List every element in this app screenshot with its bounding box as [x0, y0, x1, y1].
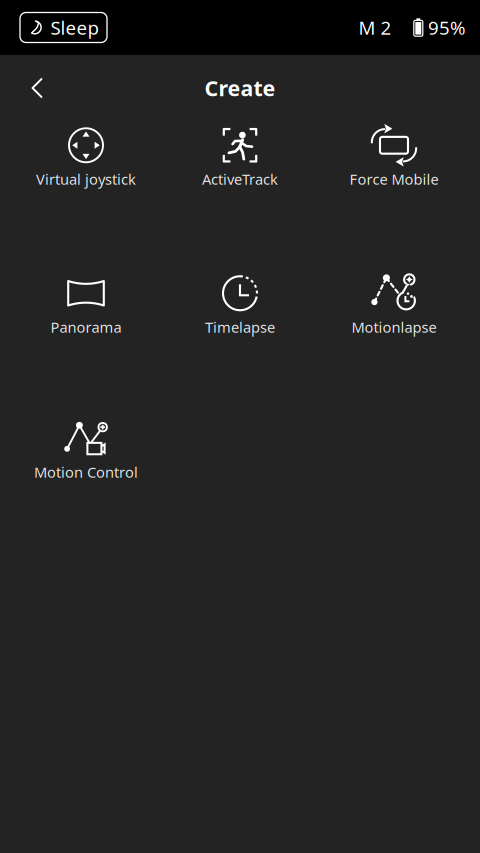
button[interactable]: Panorama	[9, 267, 163, 343]
button[interactable]: Motion Control	[9, 412, 163, 488]
staticText: Create	[204, 74, 275, 102]
button[interactable]: Timelapse	[163, 267, 317, 343]
button[interactable]: Sleep	[20, 12, 107, 42]
button[interactable]: Force Mobile	[317, 119, 471, 195]
button[interactable]: ActiveTrack	[163, 119, 317, 195]
button[interactable]: Back	[13, 64, 61, 112]
staticText: M 2	[359, 15, 392, 40]
button[interactable]: Virtual joystick	[9, 119, 163, 195]
staticText: 95%	[428, 15, 466, 40]
staticText: Motionlapse	[351, 317, 436, 337]
button[interactable]: Motionlapse	[317, 267, 471, 343]
staticText: Panorama	[50, 317, 121, 337]
staticText: Motion Control	[34, 462, 138, 482]
staticText: ActiveTrack	[202, 169, 278, 189]
staticText: Virtual joystick	[36, 169, 136, 189]
staticText: Timelapse	[205, 317, 275, 337]
staticText: Force Mobile	[349, 169, 438, 189]
staticText: Sleep	[50, 15, 98, 40]
